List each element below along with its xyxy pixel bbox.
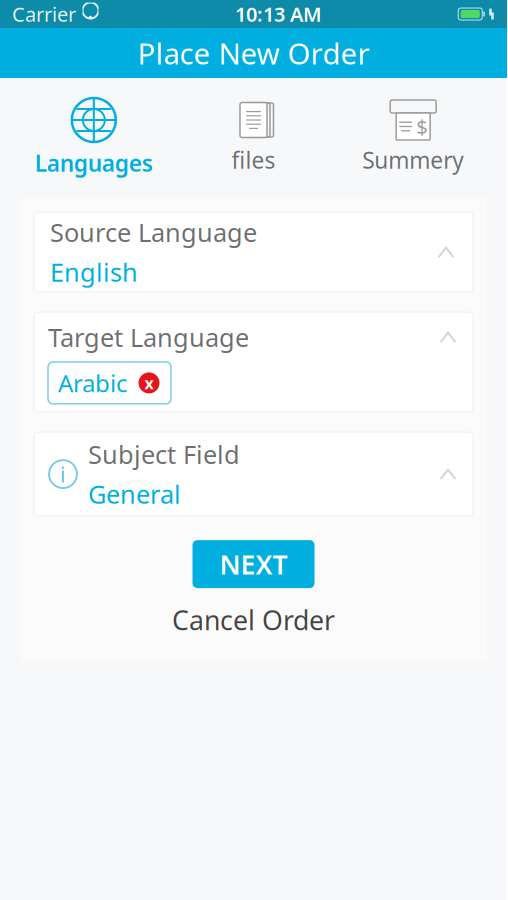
staticText: General — [88, 477, 181, 511]
staticText: Summery — [362, 145, 464, 175]
staticText: Arabic — [58, 367, 128, 399]
button[interactable]: Target Language — [34, 312, 473, 412]
staticText: Source Language — [50, 215, 257, 249]
staticText: Carrier — [12, 1, 76, 27]
staticText: Cancel Order — [172, 602, 335, 637]
button[interactable]: Source Language — [34, 212, 473, 292]
button[interactable]: $ — [333, 93, 493, 181]
button[interactable]: files — [174, 93, 333, 181]
staticText: Place New Order — [137, 33, 369, 72]
button[interactable]: i — [34, 432, 473, 516]
staticText: Subject Field — [88, 437, 240, 471]
button[interactable]: Remove Arabic — [137, 371, 161, 395]
staticText: x — [144, 372, 153, 393]
staticText: $ — [416, 113, 427, 140]
button[interactable]: NEXT — [192, 540, 314, 588]
staticText: Languages — [35, 148, 153, 178]
staticText: English — [50, 255, 138, 289]
staticText: files — [231, 145, 275, 175]
staticText: Target Language — [48, 320, 249, 354]
staticText: i — [60, 460, 66, 488]
button[interactable]: Cancel Order — [156, 596, 351, 643]
staticText: NEXT — [219, 546, 287, 582]
button[interactable]: Languages — [14, 90, 174, 184]
staticText: 10:13 AM — [235, 1, 322, 27]
